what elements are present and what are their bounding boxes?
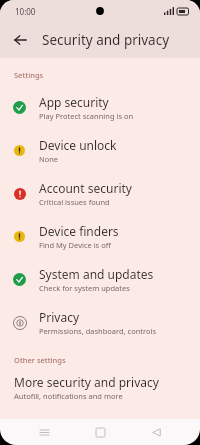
button[interactable]: Device finders — [0, 215, 200, 258]
staticText: Account security — [39, 180, 132, 196]
button[interactable]: Privacy — [0, 301, 200, 344]
staticText: Privacy — [39, 309, 80, 325]
button[interactable]: Back — [6, 26, 34, 54]
staticText: More security and privacy — [14, 374, 159, 390]
staticText: None — [39, 154, 59, 164]
staticText: Autofill, notifications and more — [14, 391, 123, 401]
staticText: App security — [39, 94, 109, 110]
staticText: Play Protect scanning is on — [39, 111, 134, 121]
staticText: Check for system updates — [39, 283, 130, 293]
staticText: 10:00 — [15, 6, 36, 17]
button[interactable]: More security and privacy — [0, 372, 200, 405]
staticText: Settings — [14, 70, 44, 80]
button[interactable]: Recents — [32, 420, 56, 444]
button[interactable]: Account security — [0, 172, 200, 215]
button[interactable]: App security — [0, 86, 200, 129]
staticText: System and updates — [39, 266, 154, 282]
staticText: Permissions, dashboard, controls — [39, 326, 157, 336]
staticText: Other settings — [14, 355, 66, 365]
button[interactable]: Home — [88, 420, 112, 444]
staticText: Security and privacy — [42, 31, 170, 49]
staticText: Device unlock — [39, 137, 117, 153]
staticText: Critical issues found — [39, 197, 110, 207]
button[interactable]: Back — [144, 420, 168, 444]
button[interactable]: Device unlock — [0, 129, 200, 172]
button[interactable]: System and updates — [0, 258, 200, 301]
staticText: Device finders — [39, 223, 119, 239]
staticText: Find My Device is off — [39, 240, 111, 250]
